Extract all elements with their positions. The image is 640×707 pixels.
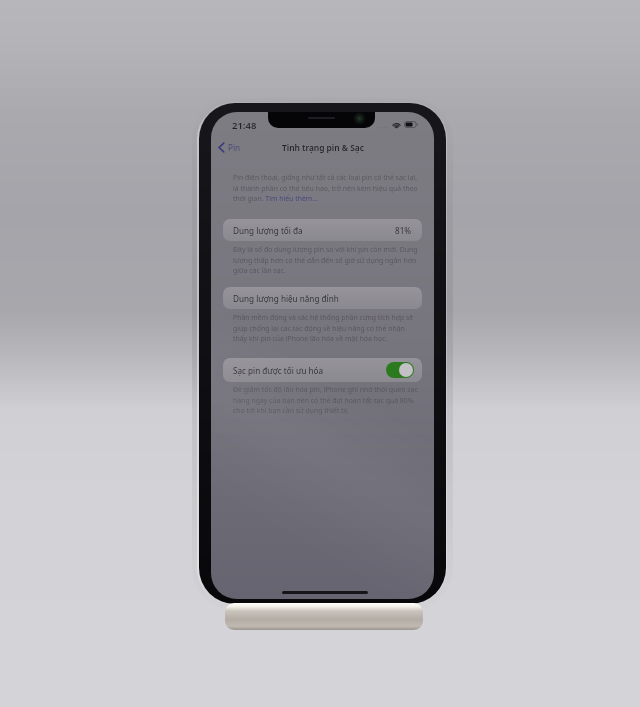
button[interactable]: Sạc pin được tối ưu hóa (223, 358, 422, 382)
staticText: Dung lượng tối đa (233, 225, 303, 236)
staticText: 21:48 (232, 119, 257, 132)
staticText: Dung lượng hiệu năng đỉnh (233, 293, 339, 304)
button[interactable]: Dung lượng tối đa (223, 219, 422, 241)
staticText: 81% (395, 225, 412, 236)
staticText: Phần mềm động và các hệ thống phần cứng … (233, 313, 419, 343)
button[interactable]: Dung lượng hiệu năng đỉnh (223, 287, 422, 309)
staticText: Tinh trạng pin & Sạc (282, 142, 364, 153)
staticText: Pin (228, 142, 241, 153)
staticText: Đây là số đo dung lượng pin so với khi p… (233, 245, 419, 275)
staticText: Để giảm tốc độ lão hóa pin, iPhone ghi n… (233, 385, 419, 415)
staticText: Pin điện thoại, giống như tất cả các loạ… (233, 173, 419, 203)
staticText: Sạc pin được tối ưu hóa (233, 365, 324, 376)
button[interactable]: Optimized battery charging toggle (386, 362, 414, 378)
button[interactable]: Back to Pin (216, 140, 243, 155)
